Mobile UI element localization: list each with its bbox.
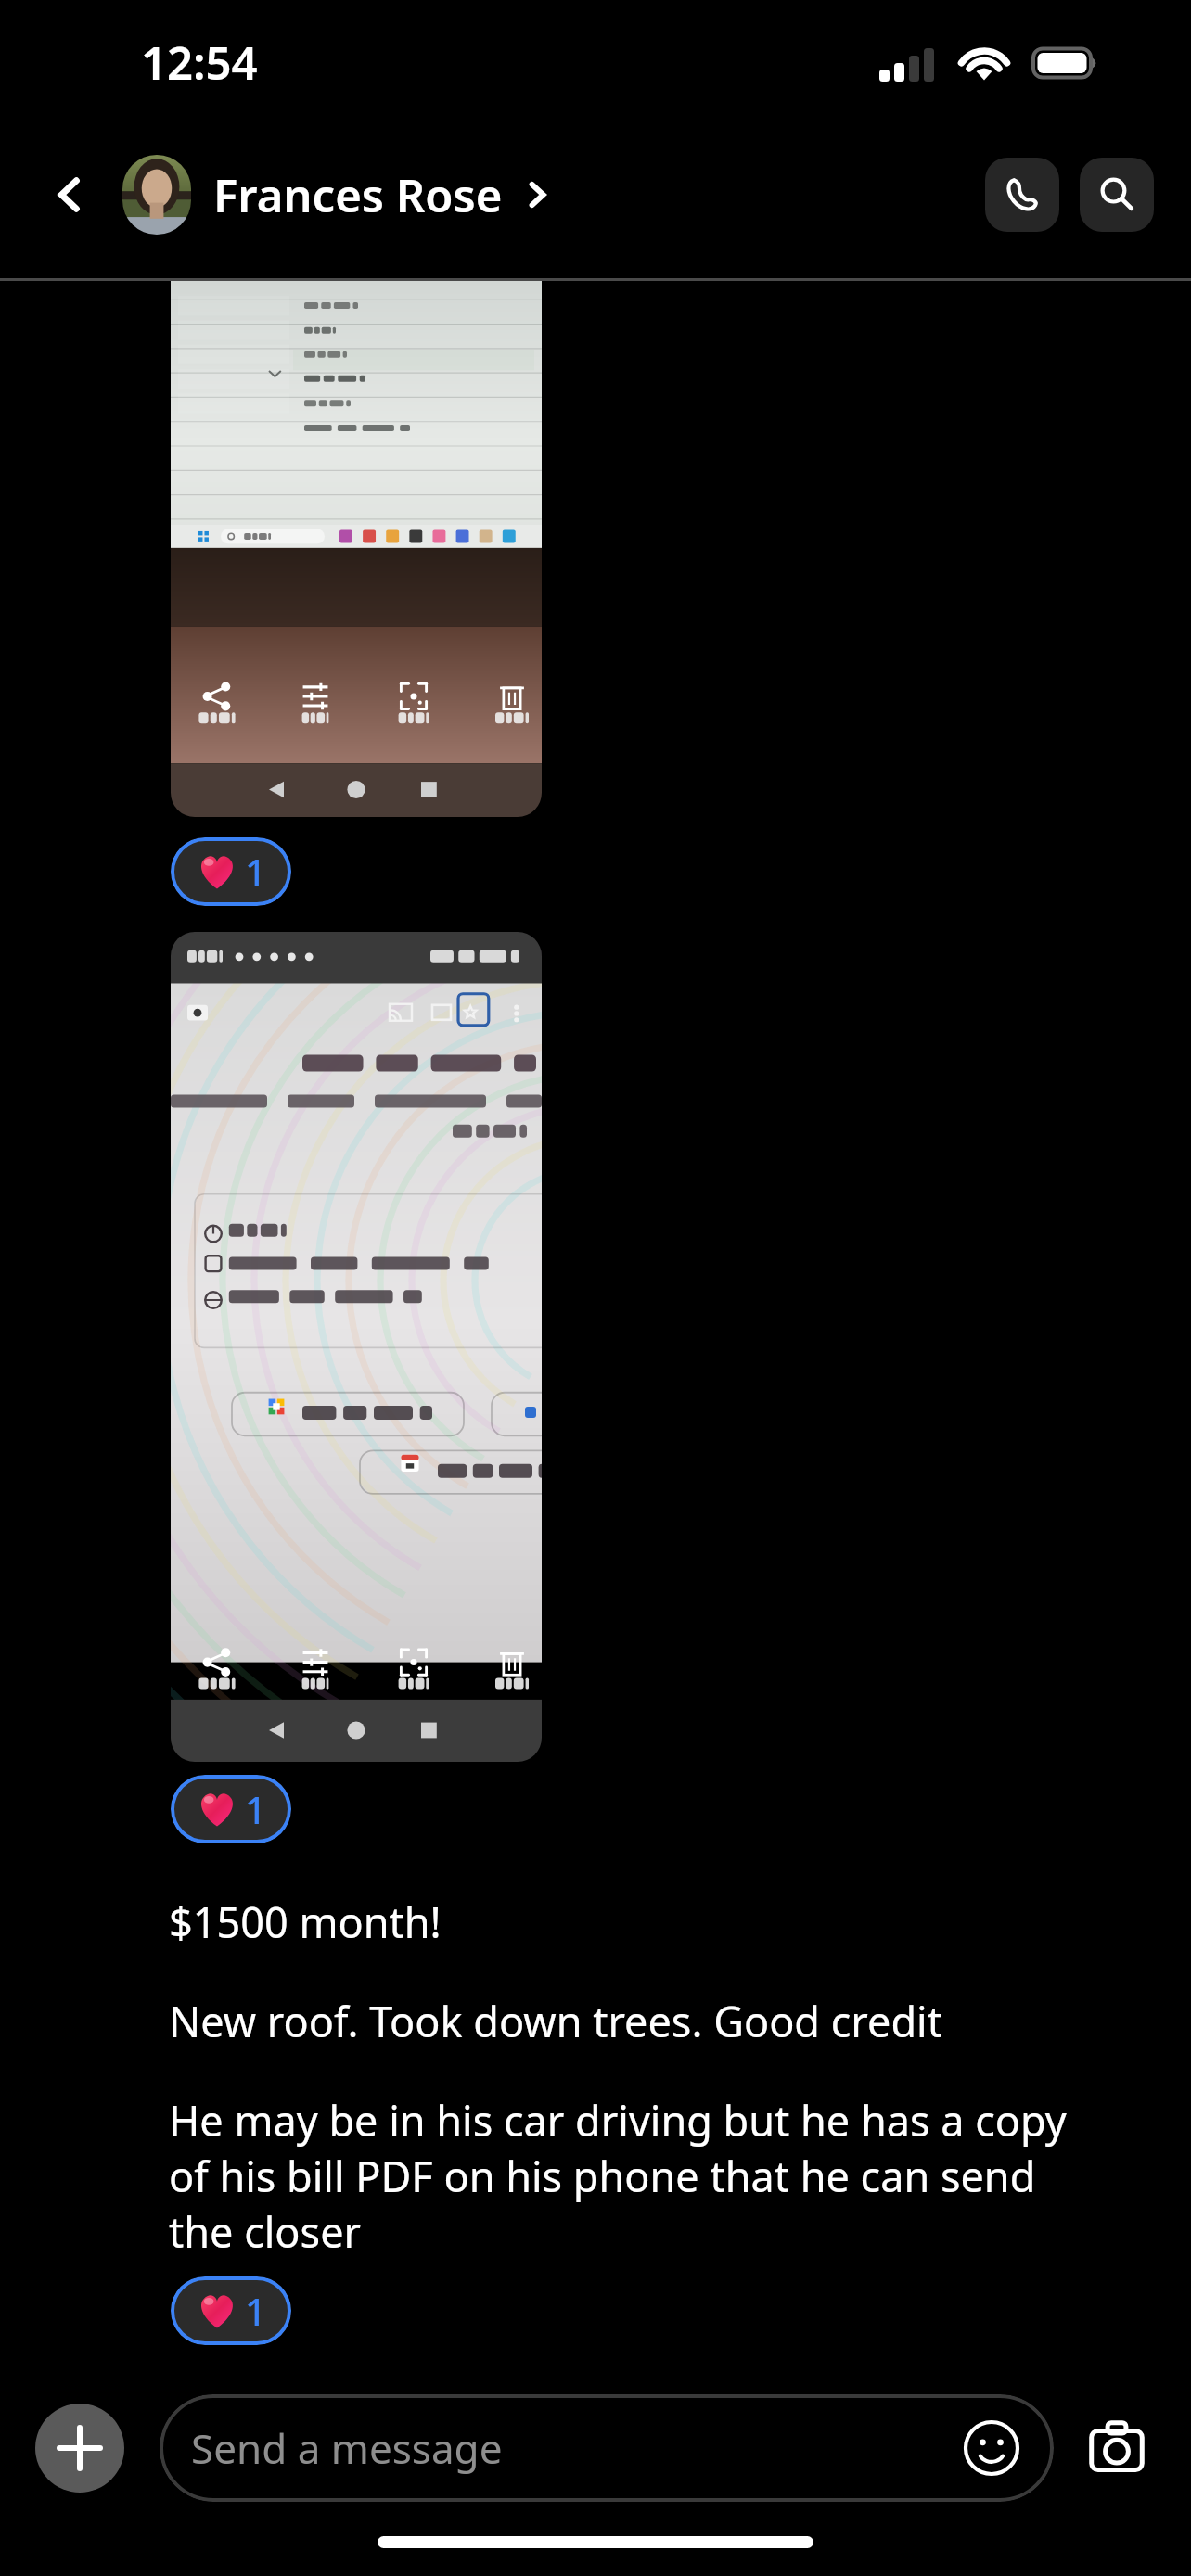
staticText: 12:54 <box>141 32 258 94</box>
button[interactable]: Love reaction, 1 <box>171 837 291 906</box>
button[interactable]: He may be in his car driving but he has … <box>169 2092 1098 2260</box>
staticText: 1 <box>245 847 266 897</box>
button[interactable]: Back <box>37 161 104 228</box>
staticText: 1 <box>245 2286 266 2336</box>
staticText: $1500 month! <box>169 1894 442 1950</box>
button[interactable]: Send a message <box>160 2394 1054 2502</box>
button[interactable]: Search <box>1080 158 1154 232</box>
button[interactable]: Frances Rose <box>122 155 985 235</box>
staticText: He may be in his car driving but he has … <box>169 2092 1098 2260</box>
button[interactable]: Add attachment <box>35 2404 124 2493</box>
button[interactable]: Call <box>985 158 1059 232</box>
button[interactable]: Photo attachment <box>171 281 542 817</box>
button[interactable]: Love reaction, 1 <box>171 1775 291 1843</box>
button[interactable]: Love reaction, 1 <box>171 2276 291 2345</box>
staticText: Send a message <box>191 2420 961 2476</box>
button[interactable]: New roof. Took down trees. Good credit <box>169 1993 942 2049</box>
staticText: 1 <box>245 1784 266 1834</box>
button[interactable]: Photo attachment <box>171 932 542 1762</box>
staticText: Frances Rose <box>213 164 503 226</box>
button[interactable]: Emoji <box>961 2417 1022 2479</box>
staticText: New roof. Took down trees. Good credit <box>169 1993 942 2049</box>
button[interactable]: Camera <box>1078 2409 1156 2487</box>
button[interactable]: $1500 month! <box>169 1894 442 1950</box>
